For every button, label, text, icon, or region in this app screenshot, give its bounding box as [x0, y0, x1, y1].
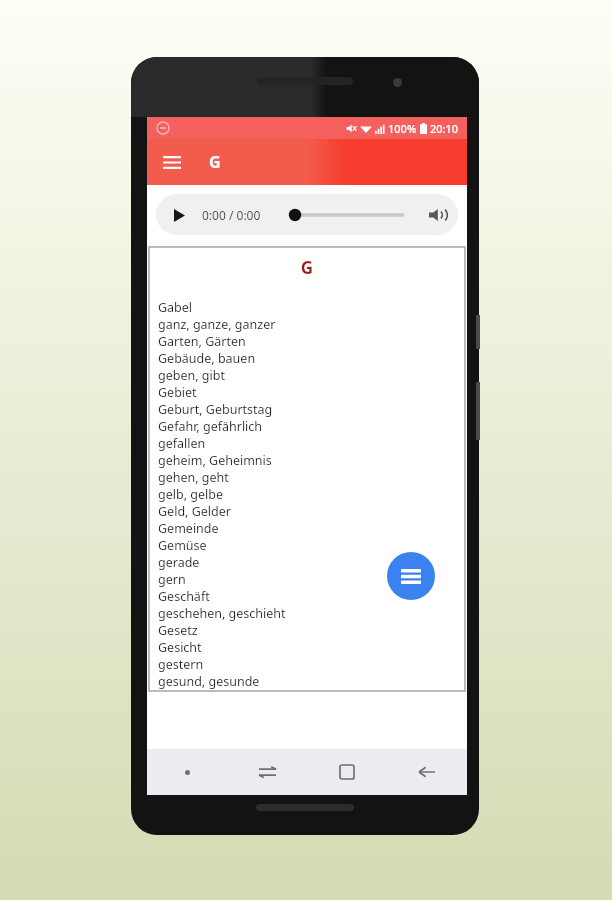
staticText: Geburt, Geburtstag	[158, 401, 273, 418]
staticText: 100%	[388, 121, 417, 136]
staticText: Gemüse	[158, 537, 207, 554]
button[interactable]: Recent apps	[307, 749, 387, 795]
button[interactable]: gerade	[158, 554, 465, 571]
staticText: Garten, Gärten	[158, 333, 246, 350]
staticText: geschehen, geschieht	[158, 605, 286, 622]
button[interactable]: Gabel	[158, 299, 465, 316]
staticText: gehen, geht	[158, 469, 229, 486]
button[interactable]: ganz, ganze, ganzer	[158, 316, 465, 333]
button[interactable]: Switch apps	[227, 749, 307, 795]
button[interactable]: gefallen	[158, 435, 465, 452]
button[interactable]: Seek position	[289, 202, 404, 228]
staticText: geben, gibt	[158, 367, 225, 384]
button[interactable]: geben, gibt	[158, 367, 465, 384]
staticText: gerade	[158, 554, 200, 571]
staticText: 0:00 / 0:00	[202, 207, 261, 223]
button[interactable]: Back	[387, 749, 467, 795]
staticText: gern	[158, 571, 186, 588]
staticText: Gesetz	[158, 622, 198, 639]
button[interactable]: Geschäft	[158, 588, 465, 605]
staticText: Gabel	[158, 299, 193, 316]
staticText: Gefahr, gefährlich	[158, 418, 263, 435]
staticText: gelb, gelbe	[158, 486, 223, 503]
staticText: gesund, gesunde	[158, 673, 260, 690]
button[interactable]: Gefahr, gefährlich	[158, 418, 465, 435]
staticText: gefallen	[158, 435, 206, 452]
button[interactable]: Open navigation menu	[152, 142, 192, 182]
button[interactable]: gestern	[158, 656, 465, 673]
button[interactable]: Play	[164, 200, 194, 230]
button[interactable]: Gebiet	[158, 384, 465, 401]
staticText: Gemeinde	[158, 520, 219, 537]
button[interactable]: Geld, Gelder	[158, 503, 465, 520]
staticText: Gebäude, bauen	[158, 350, 256, 367]
button[interactable]: gehen, geht	[158, 469, 465, 486]
staticText: Gebiet	[158, 384, 197, 401]
button[interactable]: Gemüse	[158, 537, 465, 554]
staticText: G	[149, 256, 465, 279]
staticText: ganz, ganze, ganzer	[158, 316, 276, 333]
staticText: 20:10	[430, 121, 459, 136]
button[interactable]: gelb, gelbe	[158, 486, 465, 503]
button[interactable]: Gemeinde	[158, 520, 465, 537]
staticText: geheim, Geheimnis	[158, 452, 272, 469]
staticText: Geld, Gelder	[158, 503, 231, 520]
staticText: Geschäft	[158, 588, 210, 605]
button[interactable]: geschehen, geschieht	[158, 605, 465, 622]
button[interactable]: Garten, Gärten	[158, 333, 465, 350]
button[interactable]: geheim, Geheimnis	[158, 452, 465, 469]
button[interactable]: Geburt, Geburtstag	[158, 401, 465, 418]
staticText: G	[209, 151, 221, 173]
button[interactable]: gern	[158, 571, 465, 588]
button[interactable]: Volume	[422, 200, 452, 230]
button[interactable]: Gesicht	[158, 639, 465, 656]
button[interactable]: Menu dot	[147, 749, 227, 795]
button[interactable]: gesund, gesunde	[158, 673, 465, 690]
button[interactable]: Show list	[387, 552, 435, 600]
staticText: gestern	[158, 656, 204, 673]
button[interactable]: Gebäude, bauen	[158, 350, 465, 367]
staticText: Gesicht	[158, 639, 202, 656]
button[interactable]: Gesetz	[158, 622, 465, 639]
